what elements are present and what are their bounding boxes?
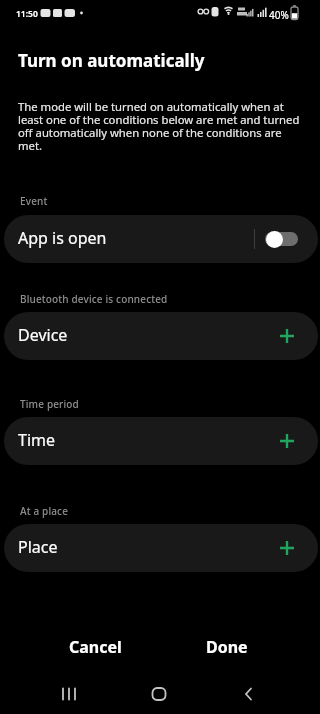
staticText: 11:50 — [16, 8, 38, 20]
button[interactable] — [137, 678, 181, 710]
staticText: The mode will be turned on automatically… — [18, 99, 300, 154]
button[interactable]: Done — [171, 632, 283, 662]
button[interactable] — [226, 678, 270, 710]
staticText: Turn on automatically — [18, 49, 205, 72]
staticText: Time — [18, 429, 56, 451]
staticText: 40% — [269, 8, 289, 22]
button[interactable]: Device — [4, 312, 318, 360]
staticText: Bluetooth device is connected — [20, 292, 168, 306]
staticText: At a place — [20, 504, 69, 518]
staticText: Place — [18, 536, 58, 558]
staticText: Done — [206, 636, 248, 658]
button[interactable]: App is open — [4, 215, 318, 263]
staticText: Event — [20, 194, 48, 208]
button[interactable] — [48, 678, 92, 710]
staticText: Cancel — [69, 636, 122, 658]
button[interactable]: Cancel — [39, 632, 151, 662]
staticText: Time period — [20, 397, 79, 411]
staticText: Device — [18, 324, 68, 346]
staticText: App is open — [18, 227, 107, 249]
button[interactable]: Time — [4, 417, 318, 465]
button[interactable]: Place — [4, 524, 318, 572]
button[interactable] — [265, 232, 298, 246]
